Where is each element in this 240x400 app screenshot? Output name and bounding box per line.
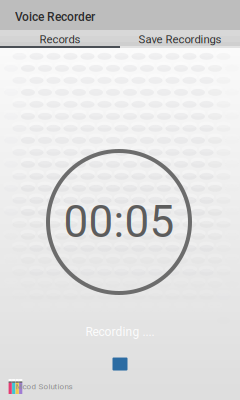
staticText: 00:05 [63, 196, 174, 248]
staticText: Recording .... [85, 325, 154, 339]
button[interactable]: Stop recording [112, 357, 127, 370]
staticText: Voice Recorder [15, 10, 95, 24]
button[interactable]: Save Recordings [120, 30, 240, 48]
staticText: Save Recordings [138, 33, 221, 46]
staticText: Mcod Solutions [15, 382, 72, 391]
button[interactable]: Records [0, 30, 120, 48]
staticText: Records [39, 33, 80, 46]
button[interactable]: Mcod Solutions [0, 0, 240, 400]
